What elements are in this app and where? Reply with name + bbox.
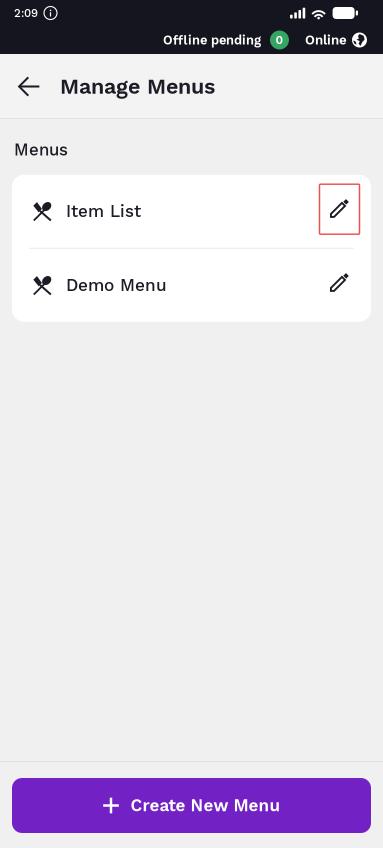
staticText: Item List [66,201,141,221]
button[interactable]: Edit Item List [319,186,359,236]
staticText: Manage Menus [60,74,215,99]
staticText: Create New Menu [130,795,280,815]
staticText: Menus [14,140,68,160]
staticText: Demo Menu [66,275,167,295]
staticText: 0 [275,33,283,47]
staticText: 2:09 [14,6,38,20]
button[interactable]: Create New Menu [12,778,371,833]
staticText: Online [305,32,347,48]
button[interactable]: Edit Demo Menu [319,260,359,310]
staticText: Offline pending [163,32,261,48]
button[interactable]: Back [7,62,51,110]
